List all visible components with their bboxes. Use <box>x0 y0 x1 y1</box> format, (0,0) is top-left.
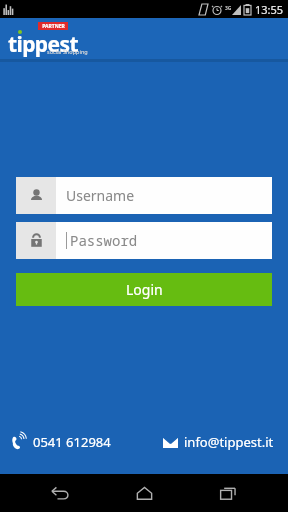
button[interactable]: Password <box>16 222 272 259</box>
button[interactable]: Email <box>163 430 274 454</box>
staticText: Login <box>126 280 163 299</box>
staticText: tippest <box>8 30 78 59</box>
staticText: Password <box>70 231 138 250</box>
button[interactable]: Back <box>36 474 84 512</box>
staticText: Username <box>66 186 135 205</box>
button[interactable]: Login <box>16 273 272 306</box>
other: Email <box>163 437 178 448</box>
staticText: 3G <box>225 5 232 12</box>
staticText: social Shopping <box>47 48 88 55</box>
staticText: info@tippest.it <box>184 433 274 451</box>
button[interactable]: Home <box>120 474 168 512</box>
staticText: PARTNER <box>42 23 65 30</box>
other: Call <box>12 435 27 450</box>
staticText: 13:55 <box>255 2 284 17</box>
button[interactable]: Recent apps <box>204 474 252 512</box>
button[interactable]: Call <box>12 430 111 454</box>
button[interactable]: Username <box>16 177 272 214</box>
staticText: 0541 612984 <box>33 433 111 451</box>
